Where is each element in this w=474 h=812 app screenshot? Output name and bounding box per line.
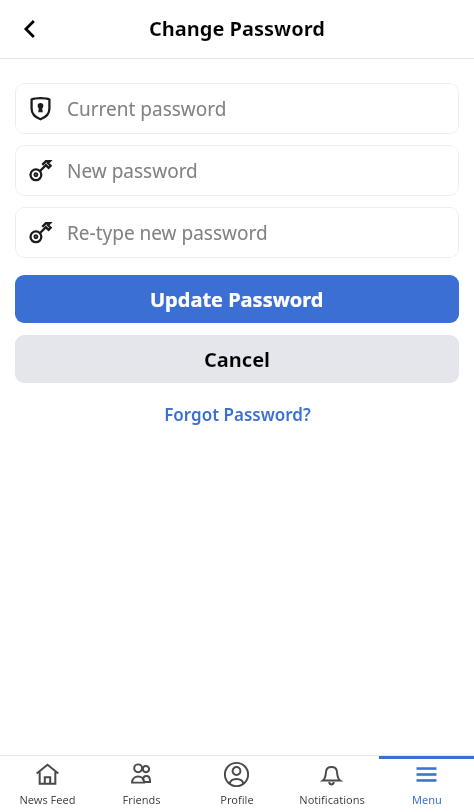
button[interactable]: Profile bbox=[189, 756, 284, 812]
button[interactable]: New password bbox=[15, 145, 459, 196]
button[interactable]: Forgot Password? bbox=[154, 399, 321, 430]
button[interactable]: Back bbox=[8, 7, 52, 51]
button[interactable]: News Feed bbox=[0, 756, 94, 812]
button[interactable]: Cancel bbox=[15, 335, 459, 383]
staticText: New password bbox=[67, 158, 198, 184]
button[interactable]: Re-type new password bbox=[15, 207, 459, 258]
staticText: Menu bbox=[412, 792, 442, 807]
staticText: Cancel bbox=[204, 346, 271, 373]
button[interactable]: Friends bbox=[94, 756, 189, 812]
button[interactable]: Current password bbox=[15, 83, 459, 134]
staticText: Current password bbox=[67, 96, 227, 122]
staticText: Update Password bbox=[150, 286, 324, 313]
staticText: Forgot Password? bbox=[164, 403, 311, 426]
staticText: News Feed bbox=[19, 792, 76, 807]
staticText: Notifications bbox=[299, 792, 365, 807]
staticText: Change Password bbox=[149, 15, 325, 42]
staticText: Re-type new password bbox=[67, 220, 268, 246]
button[interactable]: Update Password bbox=[15, 275, 459, 323]
staticText: Profile bbox=[220, 792, 254, 807]
staticText: Friends bbox=[122, 792, 161, 807]
button[interactable]: Notifications bbox=[284, 756, 379, 812]
button[interactable]: Menu bbox=[379, 756, 474, 812]
